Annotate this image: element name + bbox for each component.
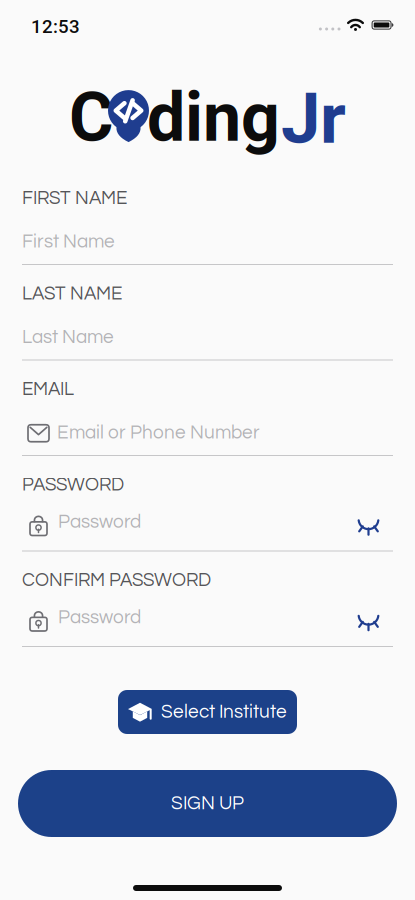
- button[interactable]: Show password: [350, 603, 387, 635]
- staticText: FIRST NAME: [22, 189, 127, 208]
- button[interactable]: Show password: [350, 508, 387, 540]
- staticText: Email or Phone Number: [57, 423, 260, 442]
- staticText: ding: [147, 78, 280, 157]
- staticText: Jr: [281, 77, 346, 160]
- staticText: 12:53: [31, 16, 80, 37]
- staticText: CONFIRM PASSWORD: [22, 571, 211, 590]
- staticText: Last Name: [22, 327, 114, 347]
- staticText: SIGN UP: [171, 794, 244, 813]
- staticText: LAST NAME: [22, 284, 122, 303]
- button[interactable]: Select Institute: [118, 690, 297, 734]
- staticText: Select Institute: [161, 702, 287, 722]
- staticText: Password: [58, 512, 141, 532]
- staticText: Password: [58, 608, 141, 627]
- staticText: C: [69, 78, 113, 157]
- staticText: EMAIL: [22, 380, 74, 399]
- staticText: First Name: [22, 232, 115, 251]
- staticText: PASSWORD: [22, 475, 124, 494]
- button[interactable]: SIGN UP: [18, 770, 397, 837]
